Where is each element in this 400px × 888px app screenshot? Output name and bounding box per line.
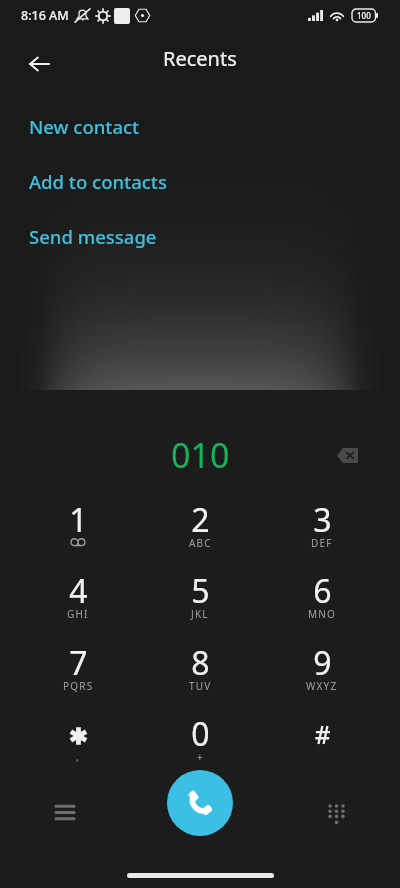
staticText: JKL bbox=[191, 607, 209, 621]
staticText: 100 bbox=[357, 10, 371, 21]
button[interactable]: Dialpad bbox=[315, 793, 357, 835]
staticText: 9 bbox=[313, 641, 332, 685]
staticText: 5 bbox=[191, 569, 210, 613]
staticText: Add to contacts bbox=[29, 169, 167, 194]
staticText: 2 bbox=[191, 498, 210, 542]
button[interactable]: 0 bbox=[139, 708, 261, 764]
button[interactable]: 9 bbox=[261, 637, 383, 693]
staticText: 1 bbox=[69, 498, 88, 542]
staticText: 0 bbox=[191, 712, 210, 756]
staticText: PQRS bbox=[63, 679, 94, 693]
staticText: 8:16 AM bbox=[21, 7, 69, 24]
button[interactable]: 2 bbox=[139, 494, 261, 550]
button[interactable]: Call bbox=[167, 770, 233, 836]
staticText: ABC bbox=[189, 536, 212, 550]
staticText: 3 bbox=[313, 498, 332, 542]
button[interactable]: 7 bbox=[17, 637, 139, 693]
button[interactable]: Add to contacts bbox=[0, 154, 400, 209]
button[interactable]: 5 bbox=[139, 565, 261, 621]
button[interactable]: Back bbox=[17, 42, 60, 85]
staticText: TUV bbox=[189, 679, 212, 693]
staticText: DEF bbox=[311, 536, 333, 550]
staticText: 4 bbox=[69, 569, 88, 613]
button[interactable]: 4 bbox=[17, 565, 139, 621]
staticText: MNO bbox=[308, 607, 337, 621]
staticText: , bbox=[76, 750, 80, 764]
staticText: 8 bbox=[191, 641, 210, 685]
staticText: 7 bbox=[69, 641, 88, 685]
staticText: + bbox=[197, 750, 204, 764]
staticText: Recents bbox=[163, 45, 237, 72]
button[interactable]: 1 bbox=[17, 494, 139, 550]
button[interactable]: Send message bbox=[0, 209, 400, 264]
staticText: 010 bbox=[171, 432, 230, 478]
button[interactable]: , bbox=[17, 708, 139, 764]
button[interactable]: 3 bbox=[261, 494, 383, 550]
staticText: Send message bbox=[29, 224, 157, 249]
button[interactable]: Backspace bbox=[326, 434, 368, 476]
staticText: New contact bbox=[29, 114, 140, 139]
staticText: 6 bbox=[313, 569, 332, 613]
button[interactable]: New contact bbox=[0, 99, 400, 154]
button[interactable] bbox=[261, 708, 383, 764]
button[interactable]: 6 bbox=[261, 565, 383, 621]
staticText: GHI bbox=[67, 607, 89, 621]
button[interactable]: 8 bbox=[139, 637, 261, 693]
button[interactable]: More options bbox=[44, 791, 86, 833]
staticText: WXYZ bbox=[306, 679, 338, 693]
